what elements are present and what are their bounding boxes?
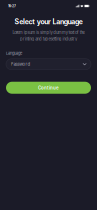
staticText: Password — [10, 62, 30, 67]
staticText: Select your Language — [14, 17, 83, 26]
staticText: Lorem ipsum is simply dummy text of the — [12, 30, 85, 35]
button[interactable]: Continue — [6, 82, 91, 94]
staticText: Language — [6, 51, 22, 56]
button[interactable]: Password — [6, 59, 91, 70]
staticText: Continue — [38, 85, 59, 90]
staticText: printing and typesetting industry — [20, 36, 77, 41]
staticText: 19:27 — [8, 4, 16, 8]
